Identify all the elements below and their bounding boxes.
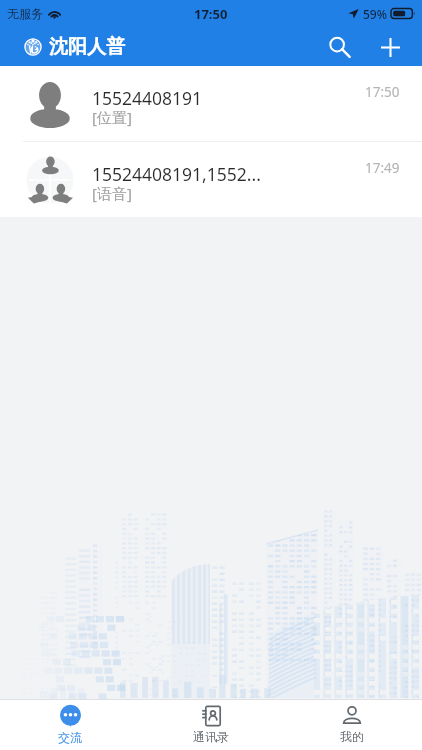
button[interactable]: Add	[372, 29, 408, 65]
staticText: 沈阳人普	[49, 35, 125, 59]
staticText: 15524408191,1552...	[92, 162, 261, 186]
button[interactable]: 通讯录	[140, 700, 281, 750]
staticText: 17:50	[365, 83, 400, 101]
staticText: 17:50	[194, 5, 228, 23]
staticText: 我的	[340, 729, 364, 744]
staticText: 59%	[363, 6, 387, 22]
staticText: 通讯录	[193, 729, 229, 744]
staticText: [位置]	[92, 107, 132, 127]
button[interactable]: 15524408191,1552...	[0, 142, 422, 217]
staticText: 无服务	[7, 6, 43, 21]
button[interactable]: Search	[322, 29, 358, 65]
staticText: [语音]	[92, 183, 132, 203]
button[interactable]: 15524408191	[0, 66, 422, 141]
button[interactable]: 交流	[0, 700, 140, 750]
staticText: 17:49	[365, 159, 400, 177]
staticText: 交流	[58, 730, 82, 745]
button[interactable]: 我的	[281, 700, 422, 750]
staticText: 15524408191	[92, 86, 203, 110]
